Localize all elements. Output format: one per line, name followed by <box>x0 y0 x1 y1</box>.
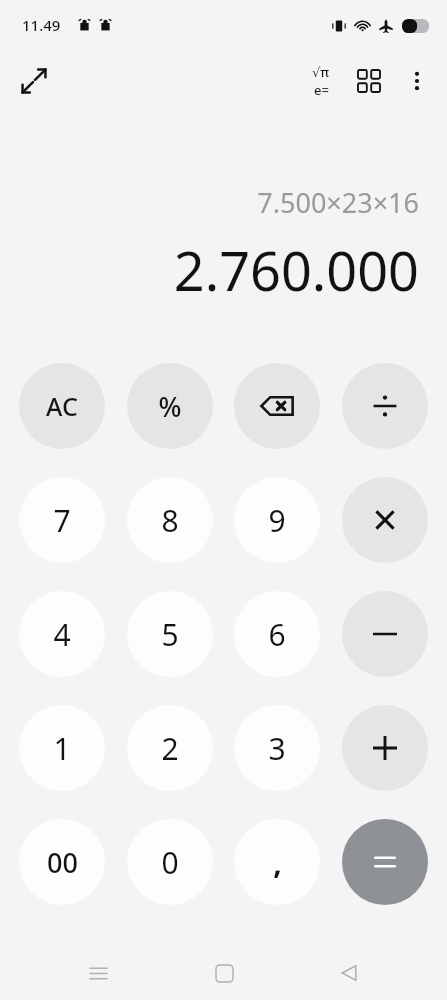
staticText: 0 <box>161 842 179 883</box>
button[interactable]: Divide <box>342 363 428 449</box>
staticText: 3 <box>268 728 286 769</box>
button[interactable]: Equals <box>342 819 428 905</box>
staticText: 00 <box>47 844 78 881</box>
button[interactable]: Multiply <box>342 477 428 563</box>
staticText: 11.49 <box>22 15 61 35</box>
button[interactable]: , <box>234 819 320 905</box>
button[interactable]: 9 <box>234 477 320 563</box>
button[interactable]: More options <box>393 57 441 105</box>
button[interactable]: 3 <box>234 705 320 791</box>
staticText: 7 <box>53 500 71 541</box>
staticText: 2 <box>161 728 179 769</box>
button[interactable]: 2 <box>127 705 213 791</box>
button[interactable]: Back <box>322 946 376 1000</box>
button[interactable]: 5 <box>127 591 213 677</box>
button[interactable]: Backspace <box>234 363 320 449</box>
button[interactable]: Scientific mode <box>297 57 345 105</box>
button[interactable]: Plus <box>342 705 428 791</box>
staticText: √π <box>312 63 330 81</box>
button[interactable]: 6 <box>234 591 320 677</box>
button[interactable]: 0 <box>127 819 213 905</box>
button[interactable]: 00 <box>19 819 105 905</box>
button[interactable]: 8 <box>127 477 213 563</box>
staticText: AC <box>46 389 78 423</box>
button[interactable]: Recent apps <box>71 946 125 1000</box>
staticText: 5 <box>161 614 179 655</box>
staticText: 1 <box>53 728 71 769</box>
button[interactable]: Collapse <box>10 57 58 105</box>
staticText: 7.500×23×16 <box>257 184 419 221</box>
staticText: % <box>158 388 182 425</box>
button[interactable]: Converter <box>345 57 393 105</box>
staticText: 9 <box>268 500 286 541</box>
button[interactable]: 1 <box>19 705 105 791</box>
button[interactable]: AC <box>19 363 105 449</box>
button[interactable]: 4 <box>19 591 105 677</box>
button[interactable]: Home <box>197 946 251 1000</box>
staticText: 8 <box>161 500 179 541</box>
staticText: 2.760.000 <box>173 233 419 307</box>
staticText: 6 <box>268 614 286 655</box>
button[interactable]: % <box>127 363 213 449</box>
staticText: , <box>273 842 282 883</box>
button[interactable]: Minus <box>342 591 428 677</box>
staticText: e= <box>314 81 329 99</box>
button[interactable]: 7 <box>19 477 105 563</box>
staticText: 4 <box>53 614 71 655</box>
